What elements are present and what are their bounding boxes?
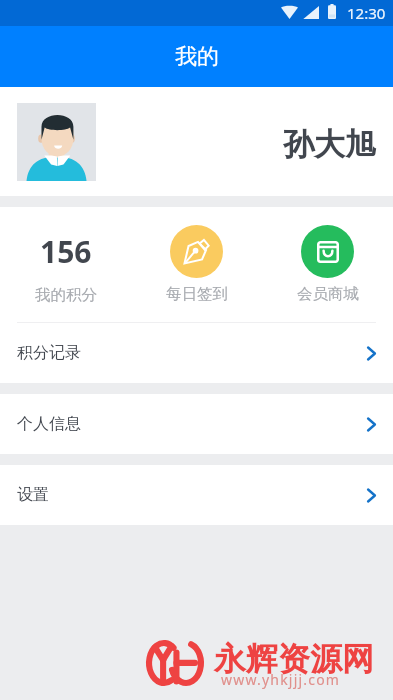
button[interactable]: 积分记录 [0,323,393,383]
staticText: 每日签到 [166,284,228,304]
staticText: 12:30 [347,3,386,23]
staticText: 永辉资源网 [214,639,374,679]
staticText: 156 [40,231,92,272]
staticText: 个人信息 [17,414,81,434]
button[interactable]: 156 [0,207,131,323]
staticText: www.yhkjjj.com [221,670,341,689]
staticText: 会员商城 [297,284,359,304]
button[interactable]: 会员商城 [262,207,393,323]
button[interactable]: 每日签到 [131,207,262,323]
staticText: 积分记录 [17,343,81,363]
button[interactable]: 个人信息 [0,394,393,454]
staticText: 孙大旭 [283,125,376,164]
button[interactable]: 设置 [0,465,393,525]
staticText: 我的积分 [35,285,97,305]
staticText: 设置 [17,485,49,505]
staticText: 我的 [175,43,219,71]
button[interactable]: 孙大旭 [0,87,393,196]
